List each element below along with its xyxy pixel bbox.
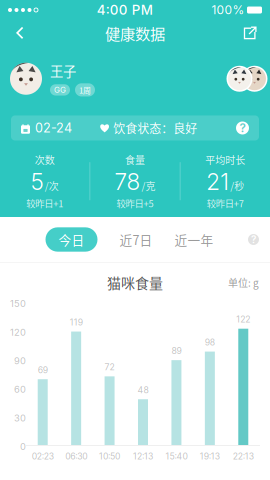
- staticText: 119: [70, 317, 83, 328]
- button[interactable]: Chart help: [248, 234, 259, 245]
- staticText: 120: [10, 327, 26, 338]
- staticText: 100%: [211, 3, 244, 17]
- staticText: 较昨日+1: [26, 196, 63, 210]
- staticText: 60: [14, 384, 26, 395]
- staticText: 王子: [50, 61, 76, 80]
- staticText: 98: [205, 337, 215, 348]
- staticText: 饮食状态：良好: [113, 119, 197, 137]
- staticText: ?: [239, 121, 245, 135]
- staticText: 近一年: [174, 230, 213, 249]
- staticText: 0: [20, 441, 26, 452]
- staticText: 90: [14, 355, 26, 366]
- button[interactable]: 近7日: [119, 230, 152, 249]
- staticText: 12:13: [133, 451, 153, 461]
- staticText: 较昨日+5: [116, 196, 153, 210]
- staticText: 30: [14, 412, 26, 424]
- staticText: 食量: [125, 152, 145, 167]
- staticText: 平均时长: [205, 152, 245, 167]
- staticText: 150: [10, 298, 26, 309]
- staticText: 48: [137, 385, 148, 395]
- staticText: 15:40: [165, 451, 187, 461]
- staticText: 69: [38, 365, 48, 375]
- staticText: 06:30: [65, 451, 87, 461]
- button[interactable]: Share: [233, 18, 267, 48]
- staticText: 单位: g: [228, 275, 259, 290]
- staticText: ?: [251, 233, 256, 246]
- button[interactable]: 近一年: [174, 230, 213, 249]
- staticText: /次: [45, 178, 59, 193]
- staticText: 健康数据: [105, 22, 165, 44]
- staticText: 02:23: [32, 451, 54, 461]
- staticText: 02-24: [35, 120, 72, 136]
- staticText: 4:00 PM: [97, 2, 153, 18]
- staticText: 10:50: [99, 451, 120, 461]
- button[interactable]: 今日: [45, 227, 97, 252]
- staticText: 72: [105, 362, 115, 372]
- staticText: GG: [54, 85, 66, 95]
- button[interactable]: Help: [236, 121, 249, 134]
- staticText: /秒: [230, 178, 244, 193]
- staticText: 今日: [58, 230, 84, 249]
- staticText: 89: [171, 346, 181, 356]
- staticText: /克: [141, 178, 155, 193]
- staticText: 78: [114, 168, 140, 195]
- staticText: 次数: [35, 152, 55, 167]
- staticText: 1周: [79, 84, 91, 96]
- staticText: 猫咪食量: [107, 272, 163, 293]
- staticText: 122: [236, 314, 250, 325]
- staticText: 22:13: [233, 451, 254, 461]
- staticText: 较昨日+7: [207, 196, 244, 210]
- staticText: 19:13: [200, 451, 220, 461]
- staticText: 近7日: [119, 230, 152, 249]
- button[interactable]: Back: [3, 18, 37, 48]
- staticText: 21: [206, 168, 229, 195]
- staticText: 5: [31, 168, 44, 195]
